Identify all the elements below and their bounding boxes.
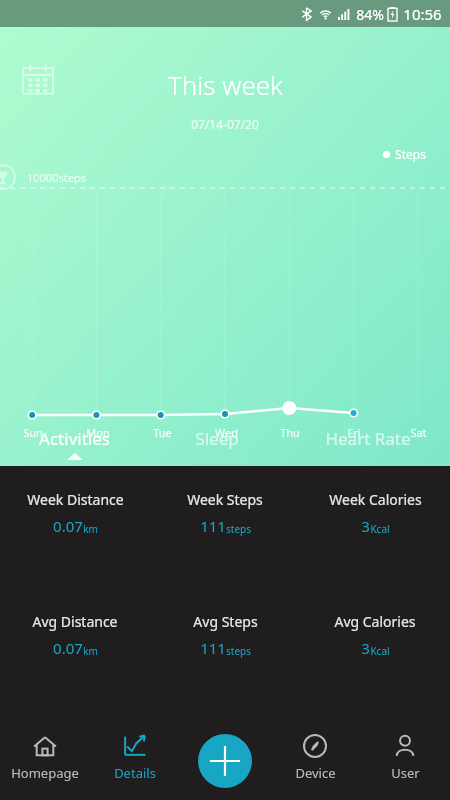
staticText: 3	[361, 516, 370, 536]
staticText: Week Steps	[187, 490, 263, 509]
staticText: 0.07	[53, 638, 83, 658]
staticText: 3	[361, 638, 370, 658]
staticText: steps	[226, 644, 251, 658]
staticText: User	[391, 764, 420, 782]
staticText: km	[83, 644, 98, 658]
staticText: Kcal	[370, 644, 390, 658]
staticText: Fri	[347, 425, 361, 440]
staticText: Avg Calories	[334, 612, 416, 631]
staticText: 84%	[356, 5, 384, 24]
button[interactable]: Avg Distance	[0, 608, 150, 662]
staticText: 111	[200, 516, 226, 536]
staticText: Details	[114, 764, 156, 782]
staticText: Sun	[23, 425, 43, 440]
staticText: steps	[226, 522, 251, 536]
button[interactable]: Add	[198, 734, 252, 788]
staticText: Thu	[280, 425, 300, 440]
staticText: 10:56	[403, 4, 442, 24]
button[interactable]: Avg Calories	[300, 608, 450, 662]
button[interactable]: Avg Steps	[150, 608, 300, 662]
staticText: 111	[200, 638, 226, 658]
staticText: Steps	[395, 146, 426, 162]
button[interactable]: User	[360, 729, 450, 786]
button[interactable]: Week Steps	[150, 486, 300, 540]
staticText: Homepage	[11, 764, 79, 782]
staticText: Sleep	[195, 427, 239, 450]
staticText: Activities	[39, 427, 110, 450]
staticText: Kcal	[370, 522, 390, 536]
staticText: Avg Distance	[32, 612, 118, 631]
staticText: km	[83, 522, 98, 536]
staticText: 0.07	[53, 516, 83, 536]
button[interactable]: Week Calories	[300, 486, 450, 540]
button[interactable]: Week Distance	[0, 486, 150, 540]
staticText: Tue	[153, 425, 172, 440]
staticText: Heart Rate	[325, 427, 411, 450]
button[interactable]: Device	[270, 729, 360, 786]
staticText: Mon	[86, 425, 110, 440]
staticText: Sat	[410, 425, 427, 440]
button[interactable]: Sleep	[148, 427, 285, 460]
button[interactable]: Activities	[0, 427, 148, 460]
staticText: Avg Steps	[193, 612, 258, 631]
staticText: Week Calories	[329, 490, 422, 509]
staticText: 07/14-07/20	[191, 116, 259, 132]
button[interactable]: Homepage	[0, 729, 90, 786]
staticText: Week Distance	[27, 490, 124, 509]
staticText: This week	[168, 67, 283, 102]
staticText: Wed	[215, 425, 238, 440]
button[interactable]: Details	[90, 729, 180, 786]
button[interactable]: Heart Rate	[285, 427, 450, 460]
staticText: 10000steps	[27, 170, 86, 185]
staticText: Device	[295, 764, 336, 782]
button[interactable]: Calendar	[22, 65, 54, 97]
